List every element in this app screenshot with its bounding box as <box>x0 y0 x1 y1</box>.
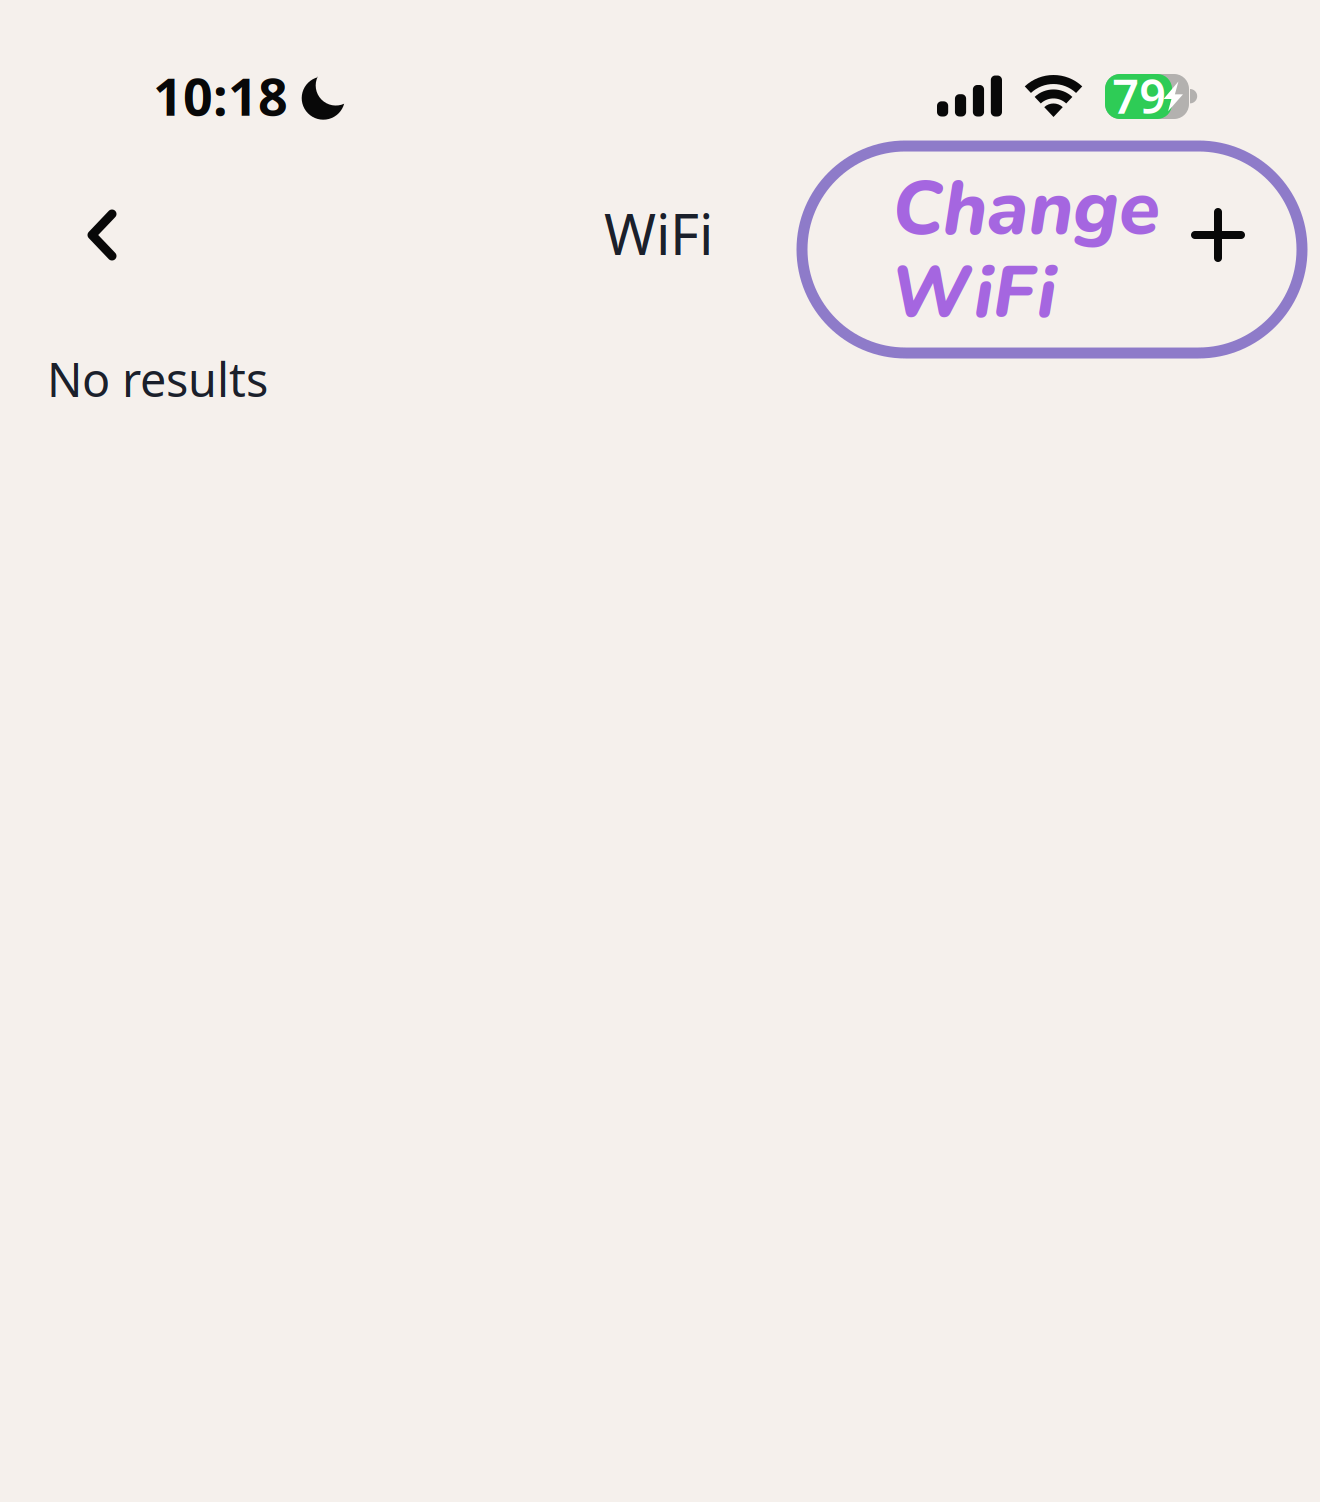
button[interactable]: Add network <box>1166 183 1270 287</box>
staticText: 10:18 <box>153 61 288 130</box>
staticText: No results <box>47 348 268 410</box>
staticText: 79 <box>1112 65 1166 127</box>
staticText: Change <box>892 158 1160 260</box>
staticText: WiFi <box>604 196 713 270</box>
button[interactable]: Back <box>50 183 154 287</box>
staticText: WiFi <box>890 244 1056 342</box>
